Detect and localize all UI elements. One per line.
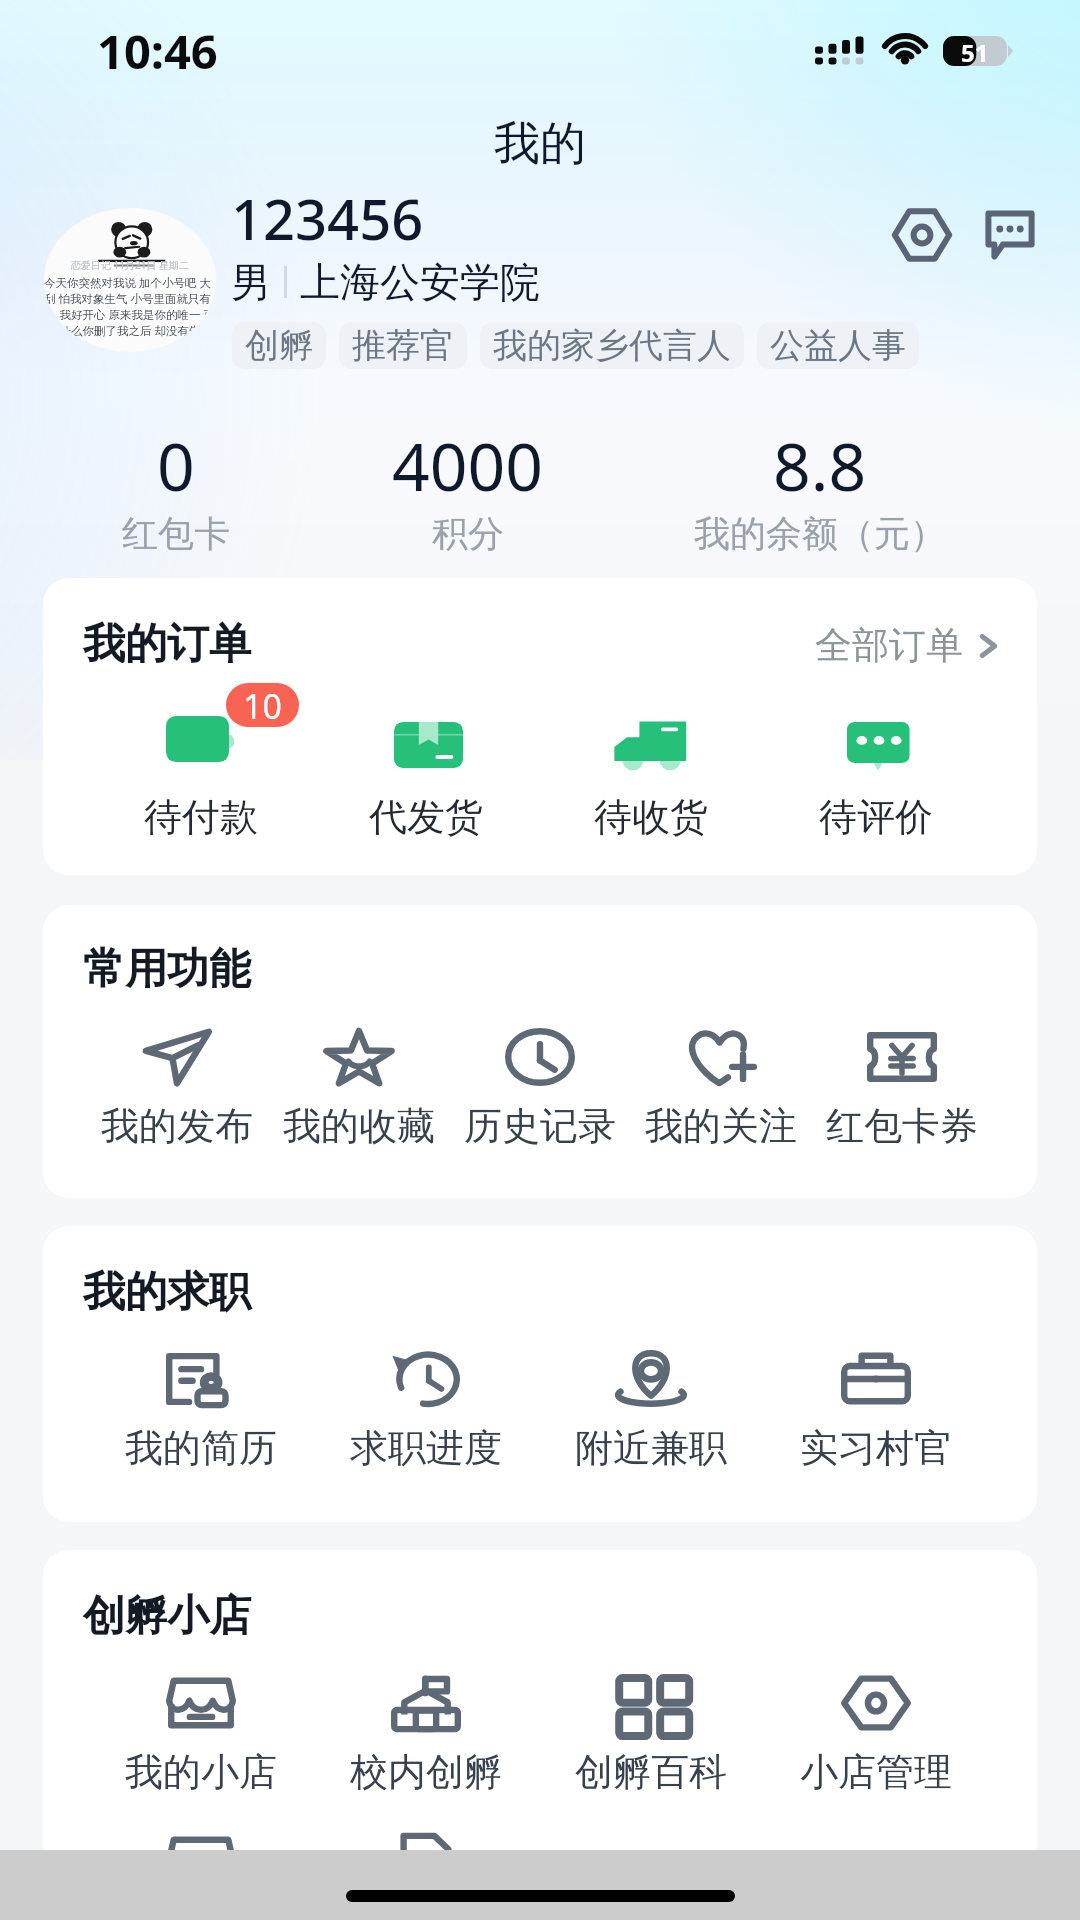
button[interactable]: Settings <box>880 193 964 277</box>
staticText: 刮 怕我对象生气 小号里面就只有你一 <box>44 291 216 307</box>
button[interactable]: 10 <box>89 707 313 841</box>
staticText: 我的关注 <box>645 1102 797 1150</box>
staticText: 我的发布 <box>101 1102 253 1150</box>
button[interactable]: 附近兼职 <box>538 1350 763 1472</box>
staticText: 代发货 <box>369 793 483 841</box>
staticText: 男 <box>231 257 271 307</box>
staticText: 公益人事 <box>770 324 906 367</box>
button[interactable]: 历史记录 <box>449 1028 630 1150</box>
button[interactable]: 校内创孵 <box>313 1674 538 1796</box>
staticText: 今天你突然对我说 加个小号吧 大号互 <box>44 275 216 291</box>
staticText: 我的家乡代言人 <box>493 324 731 367</box>
staticText: 待收货 <box>594 793 708 841</box>
staticText: 10:46 <box>97 19 218 83</box>
staticText: 积分 <box>432 511 504 556</box>
button[interactable]: 8.8 <box>640 399 1000 556</box>
staticText: 创孵小店 <box>83 1590 251 1643</box>
staticText: 10 <box>243 683 282 727</box>
button[interactable]: 公益人事 <box>757 322 919 369</box>
button[interactable]: 推荐官 <box>339 322 467 369</box>
staticText: 123456 <box>231 180 424 256</box>
button[interactable]: 实习村官 <box>763 1350 988 1472</box>
staticText: 8.8 <box>773 420 867 510</box>
staticText: 创孵 <box>245 324 313 367</box>
button[interactable]: 4000 <box>288 399 648 556</box>
staticText: 我的求职 <box>83 1266 251 1319</box>
staticText: 51 <box>961 36 989 66</box>
button[interactable]: 全部订单 <box>815 622 1001 669</box>
button[interactable]: Messages <box>968 193 1052 277</box>
staticText: 我的收藏 <box>283 1102 435 1150</box>
staticText: 我的简历 <box>125 1424 277 1472</box>
button[interactable]: 创孵百科 <box>538 1674 763 1796</box>
staticText: 小店管理 <box>800 1748 952 1796</box>
button[interactable]: 我的家乡代言人 <box>480 322 744 369</box>
button[interactable]: 我的关注 <box>630 1028 811 1150</box>
staticText: 我的 <box>494 115 586 173</box>
staticText: 校内创孵 <box>350 1748 502 1796</box>
staticText: 待付款 <box>144 793 258 841</box>
button[interactable]: 我的发布 <box>86 1028 268 1150</box>
staticText: 创孵百科 <box>575 1748 727 1796</box>
button[interactable] <box>89 1833 313 1870</box>
staticText: 我的小店 <box>125 1748 277 1796</box>
button[interactable]: 求职进度 <box>313 1350 538 1472</box>
button[interactable]: 小店管理 <box>763 1674 988 1796</box>
staticText: 红包卡券 <box>826 1102 978 1150</box>
staticText: 推荐官 <box>352 324 454 367</box>
button[interactable]: Avatar <box>44 208 216 352</box>
button[interactable] <box>313 1833 538 1870</box>
staticText: 附近兼职 <box>575 1424 727 1472</box>
button[interactable]: 待评价 <box>763 707 988 841</box>
button[interactable]: 创孵 <box>232 322 326 369</box>
button[interactable]: 我的小店 <box>89 1674 313 1796</box>
staticText: 全部订单 <box>815 622 963 669</box>
staticText: 实习村官 <box>800 1424 952 1472</box>
staticText: 0 <box>157 420 195 510</box>
staticText: 求职进度 <box>350 1424 502 1472</box>
staticText: 为什么你删了我之后 却没有告诉 <box>48 323 212 339</box>
staticText: 我的余额（元） <box>694 511 946 556</box>
staticText: 我的订单 <box>83 618 251 671</box>
staticText: 上海公安学院 <box>300 257 540 307</box>
button[interactable]: 0 <box>0 399 356 556</box>
button[interactable] <box>763 1833 988 1870</box>
staticText: 恋爱日记 11月21日 星期二 <box>71 258 190 272</box>
button[interactable]: 我的简历 <box>89 1350 313 1472</box>
button[interactable]: 待收货 <box>538 707 763 841</box>
staticText: 历史记录 <box>464 1102 616 1150</box>
staticText: 人 我好开心 原来我是你的唯一 可 <box>45 307 215 323</box>
staticText: 红包卡 <box>122 511 230 556</box>
button[interactable]: 红包卡券 <box>811 1028 992 1150</box>
staticText: 4000 <box>392 420 544 510</box>
button[interactable] <box>538 1833 763 1870</box>
staticText: 待评价 <box>819 793 933 841</box>
button[interactable]: 我的收藏 <box>268 1028 449 1150</box>
button[interactable]: 代发货 <box>313 707 538 841</box>
staticText: 常用功能 <box>83 943 251 996</box>
